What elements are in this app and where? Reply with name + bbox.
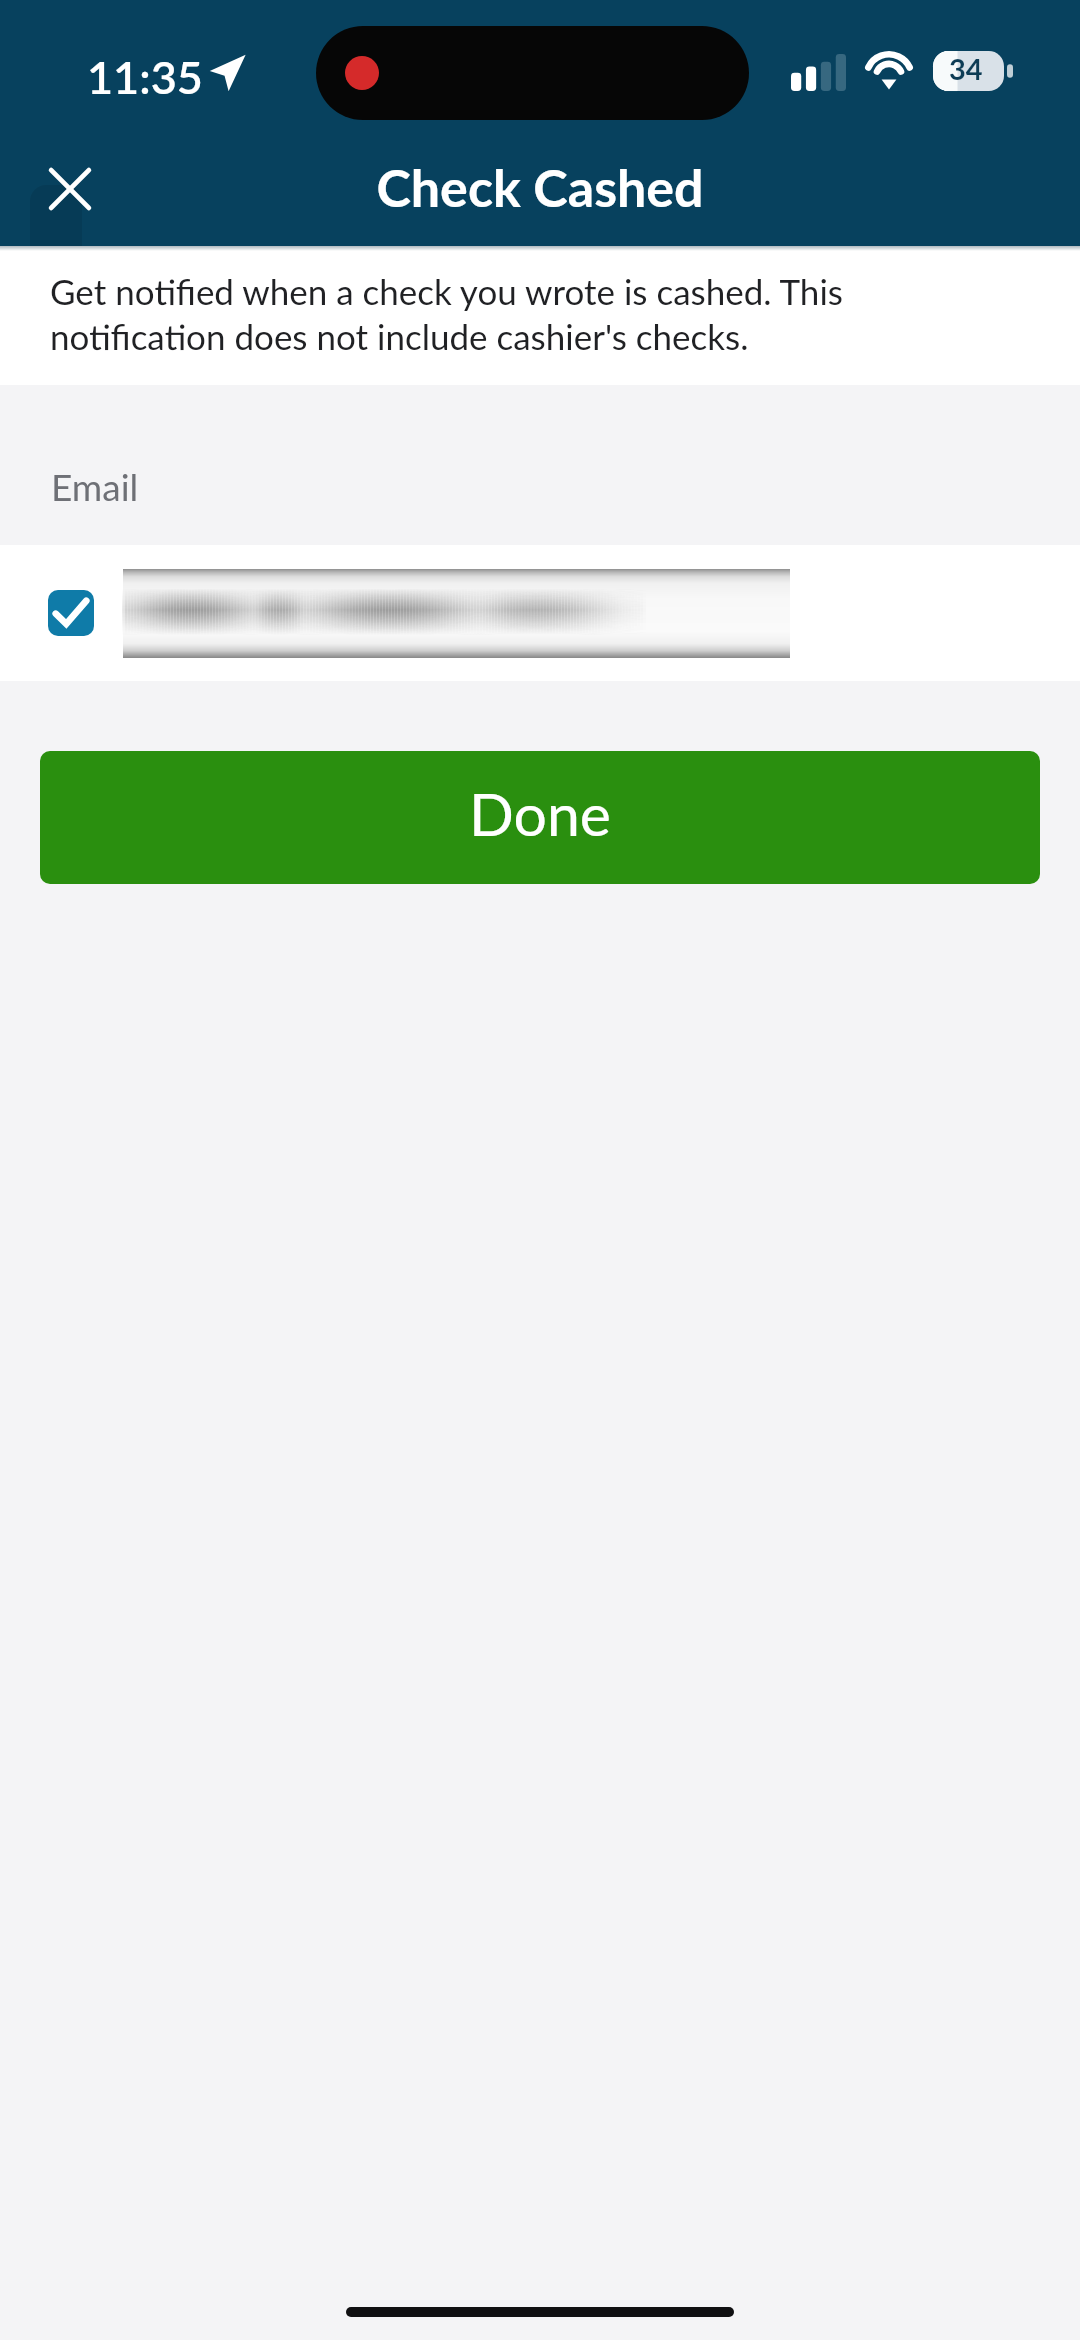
staticText: Done xyxy=(469,778,611,849)
staticText: 34 xyxy=(949,51,983,86)
button[interactable]: Close xyxy=(26,145,114,233)
button[interactable]: Email notification enabled xyxy=(0,545,1080,681)
staticText: Email xyxy=(51,464,139,508)
staticText: 11:35 xyxy=(87,50,203,104)
staticText: Check Cashed xyxy=(376,156,704,218)
button[interactable]: Done xyxy=(40,751,1040,884)
staticText: Get notified when a check you wrote is c… xyxy=(50,270,1020,357)
